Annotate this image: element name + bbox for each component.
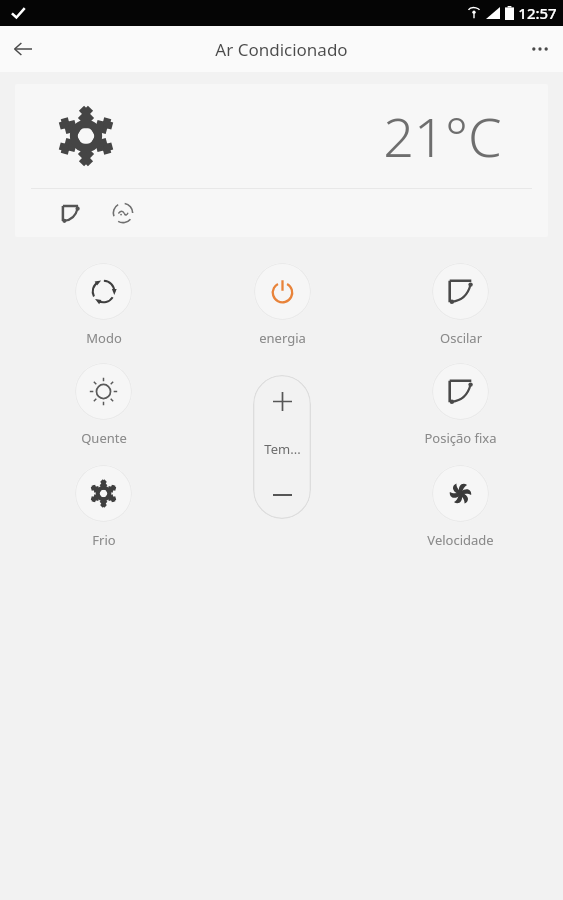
staticText: Oscilar xyxy=(440,329,482,347)
staticText: Velocidade xyxy=(427,531,494,549)
button[interactable]: Modo xyxy=(75,261,132,349)
button[interactable]: Quente xyxy=(75,361,132,449)
staticText: Frio xyxy=(92,531,116,549)
button[interactable]: Oscilar xyxy=(53,196,87,230)
button[interactable]: Increase temperature xyxy=(253,375,311,427)
staticText: Modo xyxy=(86,329,122,347)
staticText: Posição fixa xyxy=(424,429,497,447)
staticText: Tem... xyxy=(264,440,301,458)
button[interactable]: Decrease temperature xyxy=(253,471,311,519)
staticText: Ar Condicionado xyxy=(215,38,348,61)
button[interactable]: Velocidade xyxy=(106,196,140,230)
button[interactable]: Back xyxy=(0,26,46,72)
staticText: 12:57 xyxy=(518,3,557,23)
button[interactable]: energia xyxy=(254,261,311,349)
button[interactable]: More options xyxy=(517,26,563,72)
button[interactable]: Frio xyxy=(75,463,132,551)
button[interactable]: Posicao fixa xyxy=(424,361,497,449)
button[interactable]: Oscilar xyxy=(432,261,489,349)
staticText: 21°C xyxy=(383,99,502,173)
staticText: energia xyxy=(259,329,306,347)
button[interactable]: Velocidade xyxy=(427,463,494,551)
staticText: Quente xyxy=(81,429,127,447)
